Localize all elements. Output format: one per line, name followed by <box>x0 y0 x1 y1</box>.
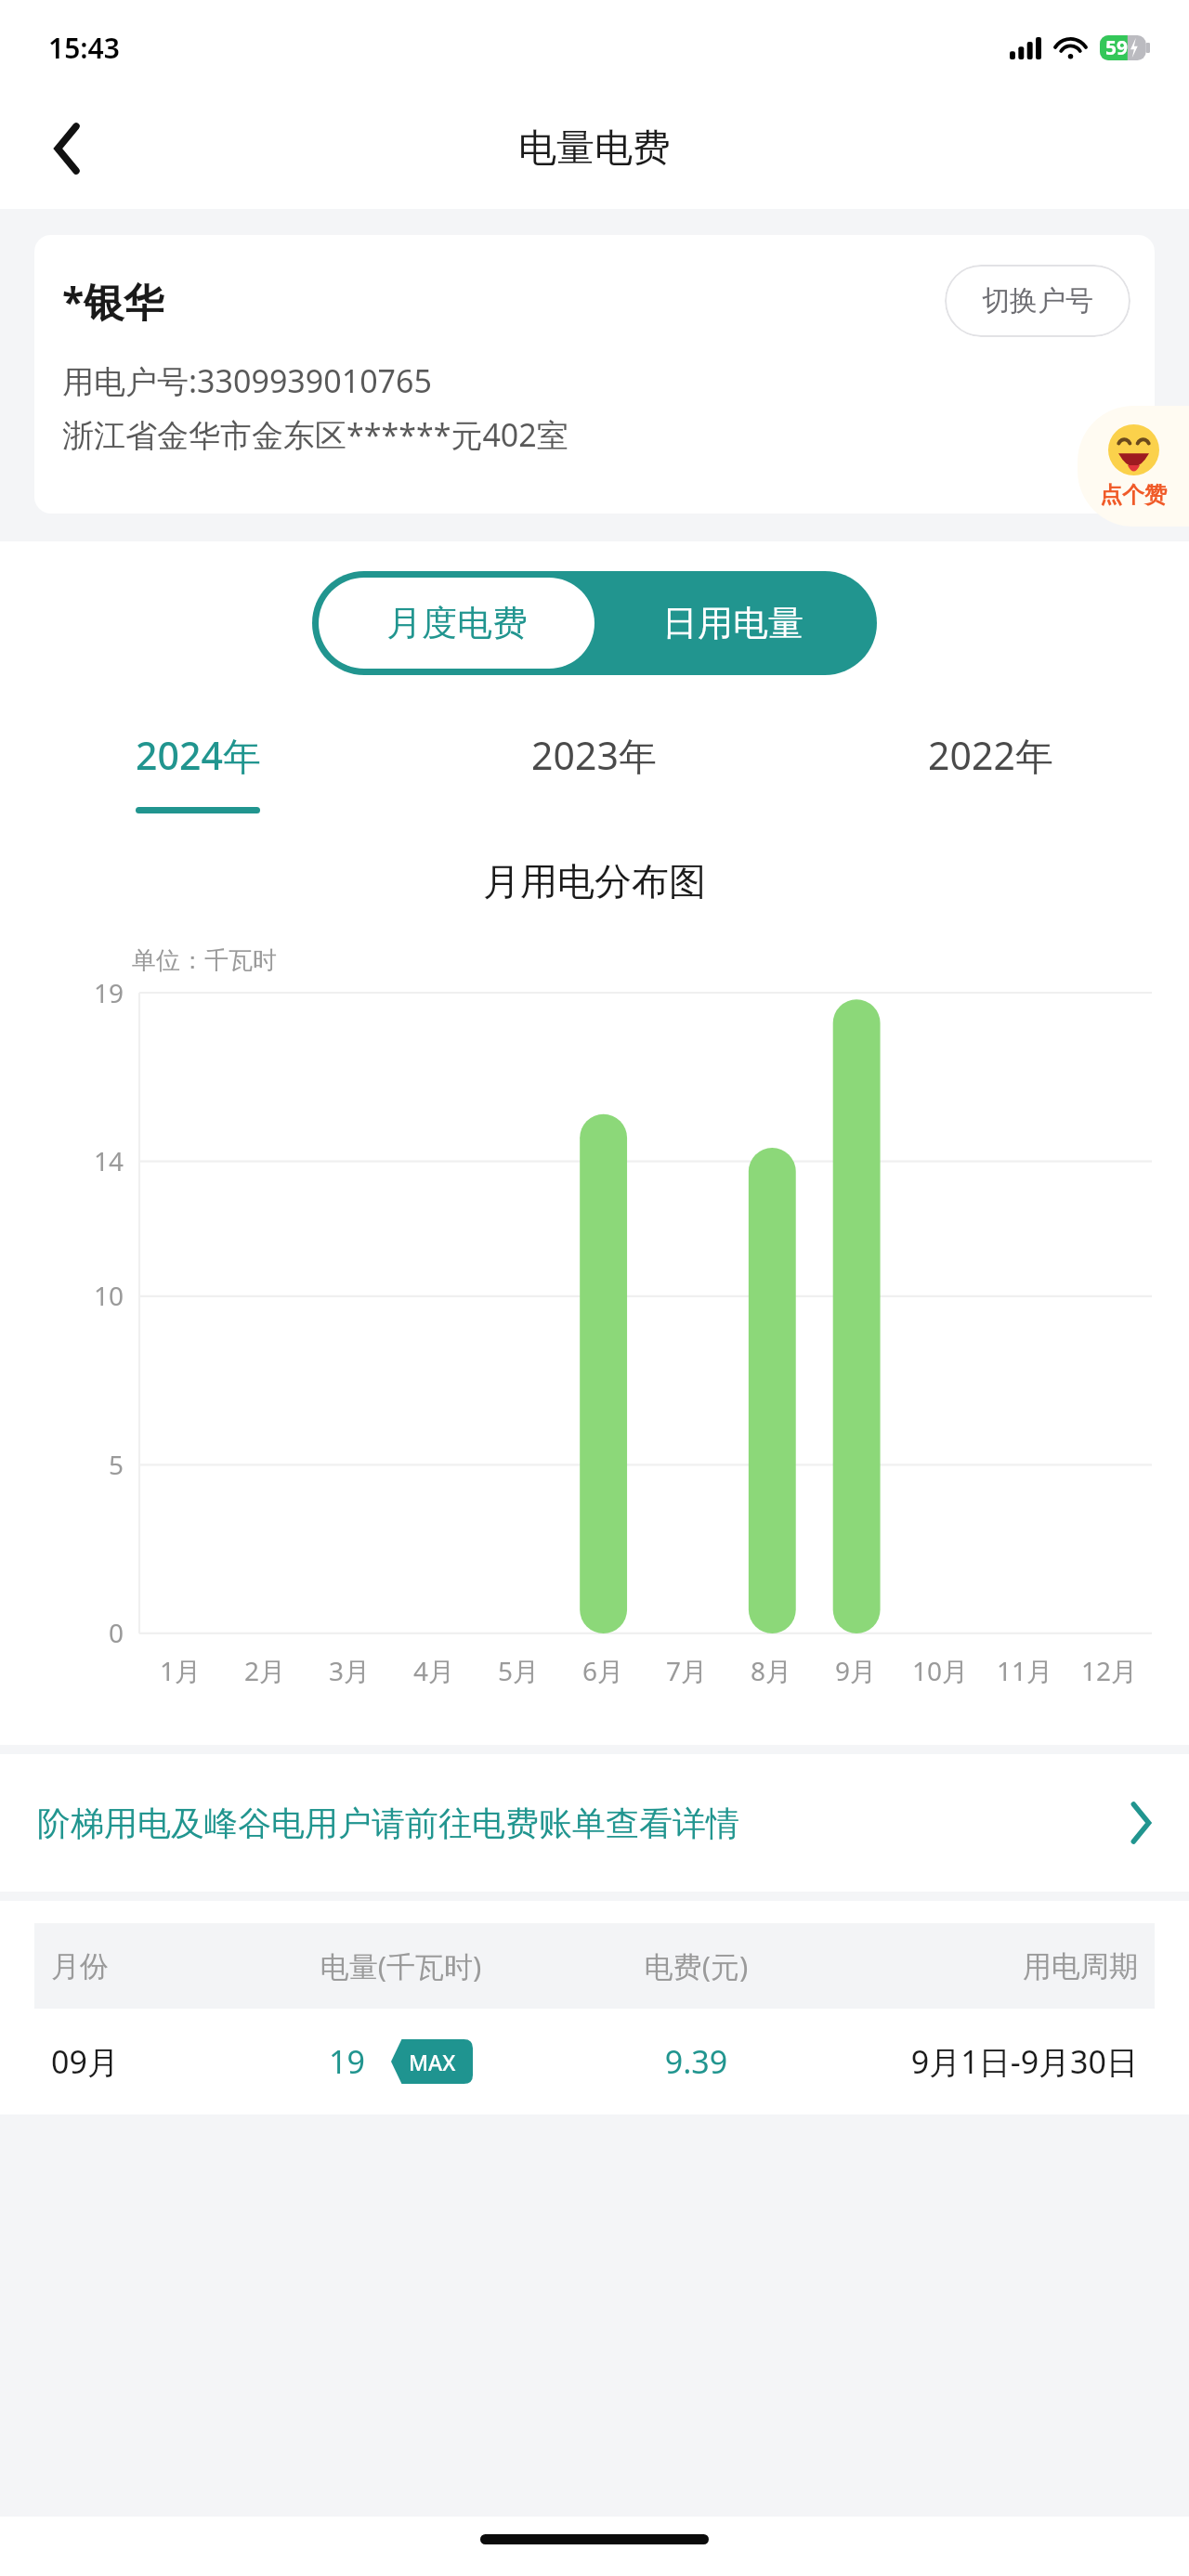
staticText: 2023年 <box>531 729 657 781</box>
staticText: 6月 <box>582 1653 624 1688</box>
staticText: 电量电费 <box>518 124 671 173</box>
staticText: 5月 <box>498 1653 540 1688</box>
staticText: 11月 <box>997 1653 1053 1688</box>
button[interactable]: 09月 <box>34 2009 1155 2114</box>
button[interactable]: *银华 <box>34 235 1155 514</box>
staticText: 阶梯用电及峰谷电用户请前往电费账单查看详情 <box>37 1802 739 1844</box>
staticText: 2月 <box>244 1653 286 1688</box>
staticText: 月用电分布图 <box>0 858 1189 904</box>
button[interactable]: 2024年 <box>0 725 396 817</box>
staticText: 月份 <box>51 1948 238 1984</box>
staticText: 9.39 <box>564 2040 829 2083</box>
staticText: 浙江省金华市金东区******元402室 <box>62 413 568 456</box>
staticText: 5 <box>109 1447 124 1482</box>
staticText: 单位：千瓦时 <box>132 945 277 976</box>
button[interactable]: Back <box>32 112 104 185</box>
staticText: 14 <box>94 1143 124 1178</box>
button[interactable]: 月度电费 <box>319 578 594 669</box>
staticText: 月度电费 <box>386 601 528 645</box>
staticText: 电量(千瓦时) <box>238 1946 564 1985</box>
staticText: 19 <box>329 2040 365 2083</box>
staticText: MAX <box>409 2048 456 2076</box>
staticText: 3月 <box>329 1653 371 1688</box>
staticText: 8月 <box>751 1653 792 1688</box>
staticText: 10 <box>94 1278 124 1313</box>
button[interactable]: 切换户号 <box>945 265 1130 337</box>
staticText: 日用电量 <box>662 601 804 645</box>
staticText: 19 <box>94 975 124 1010</box>
staticText: 1月 <box>160 1653 202 1688</box>
staticText: 7月 <box>666 1653 708 1688</box>
staticText: 2022年 <box>928 729 1053 781</box>
staticText: 15:43 <box>48 29 120 67</box>
button[interactable]: 日用电量 <box>594 578 870 669</box>
staticText: 59 <box>1105 34 1129 61</box>
staticText: 用电周期 <box>829 1948 1138 1984</box>
staticText: 4月 <box>413 1653 455 1688</box>
staticText: 9月 <box>835 1653 877 1688</box>
staticText: *银华 <box>62 274 164 329</box>
staticText: 0 <box>109 1615 124 1650</box>
button[interactable]: 2022年 <box>792 725 1189 817</box>
staticText: 09月 <box>51 2040 238 2083</box>
staticText: 12月 <box>1081 1653 1138 1688</box>
staticText: 电费(元) <box>564 1946 829 1985</box>
staticText: 2024年 <box>136 729 261 781</box>
button[interactable]: 2023年 <box>396 725 792 817</box>
staticText: 点个赞 <box>1100 481 1167 509</box>
staticText: 10月 <box>912 1653 969 1688</box>
staticText: 9月1日-9月30日 <box>829 2040 1138 2083</box>
staticText: 用电户号:3309939010765 <box>62 359 432 402</box>
button[interactable]: 点个赞 <box>1078 406 1189 527</box>
button[interactable]: 阶梯用电及峰谷电用户请前往电费账单查看详情 <box>0 1754 1189 1892</box>
staticText: 切换户号 <box>982 283 1093 319</box>
